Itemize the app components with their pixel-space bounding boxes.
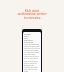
staticText: Read the result aloud, listen for the pl… xyxy=(24,61,40,72)
staticText: Writing well begins with a clear idea an… xyxy=(24,44,40,60)
staticText: Drafting with a clear and honest voice t… xyxy=(24,33,33,43)
staticText: Kick start authorative writer in minutes xyxy=(2,8,62,20)
